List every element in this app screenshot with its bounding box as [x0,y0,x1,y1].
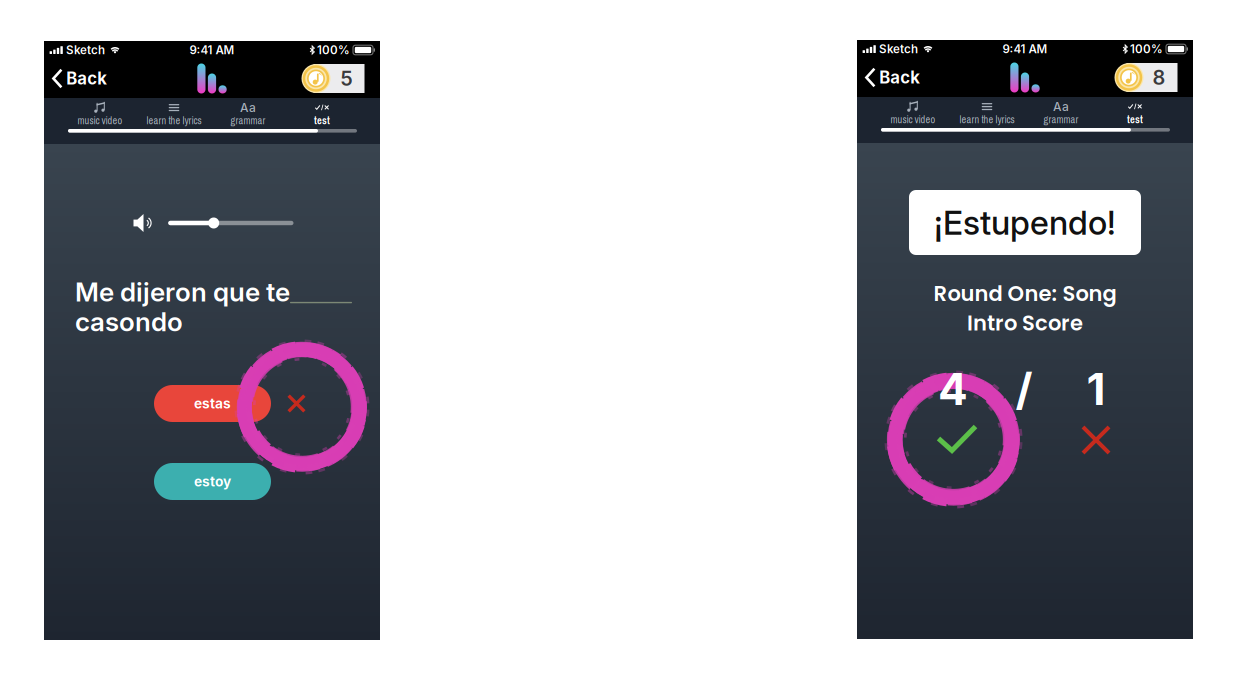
staticText: ¡Estupendo! [934,202,1116,243]
button[interactable]: test [1098,101,1172,127]
button[interactable]: Aa [1024,101,1098,127]
button[interactable]: Coins: 5 [301,64,364,93]
staticText: Me dijeron que te [75,276,290,308]
button[interactable]: music video [876,101,950,127]
staticText: music video [890,113,935,126]
staticText: Aa [240,100,256,115]
button[interactable]: Back [857,61,930,94]
staticText: estas [194,395,231,412]
button[interactable]: estas [154,385,271,422]
staticText: 1 [1086,362,1105,416]
staticText: Back [879,67,920,88]
button[interactable]: music video [63,102,137,128]
staticText: 9:41 AM [1002,42,1047,56]
staticText: Sketch [66,43,105,57]
staticText: grammar [1043,113,1078,126]
staticText: / [1015,362,1032,416]
staticText: 9:41 AM [189,43,234,57]
staticText: Sketch [879,42,918,56]
staticText: learn the lyrics [146,114,201,127]
staticText: estoy [194,473,231,490]
staticText: 5 [340,66,352,91]
staticText: learn the lyrics [959,113,1014,126]
button[interactable]: test [285,102,359,128]
button[interactable]: learn the lyrics [137,102,211,128]
staticText: test [1127,112,1143,127]
staticText: Back [66,68,107,89]
staticText: 8 [1152,65,1165,90]
staticText: music video [77,114,122,127]
staticText: Aa [1053,99,1069,114]
staticText: Intro Score [967,308,1083,338]
button[interactable]: estoy [154,463,271,500]
button[interactable]: Coins: 8 [1114,63,1177,92]
staticText: Round One: Song [933,279,1116,308]
staticText: 4 [938,362,968,416]
staticText: grammar [230,114,265,127]
staticText: 100% [1130,42,1163,56]
staticText: test [314,113,330,128]
staticText: casondo [75,306,183,338]
button[interactable]: Aa [211,102,285,128]
staticText: 100% [317,43,350,57]
button[interactable]: learn the lyrics [950,101,1024,127]
button[interactable]: Back [44,62,117,95]
